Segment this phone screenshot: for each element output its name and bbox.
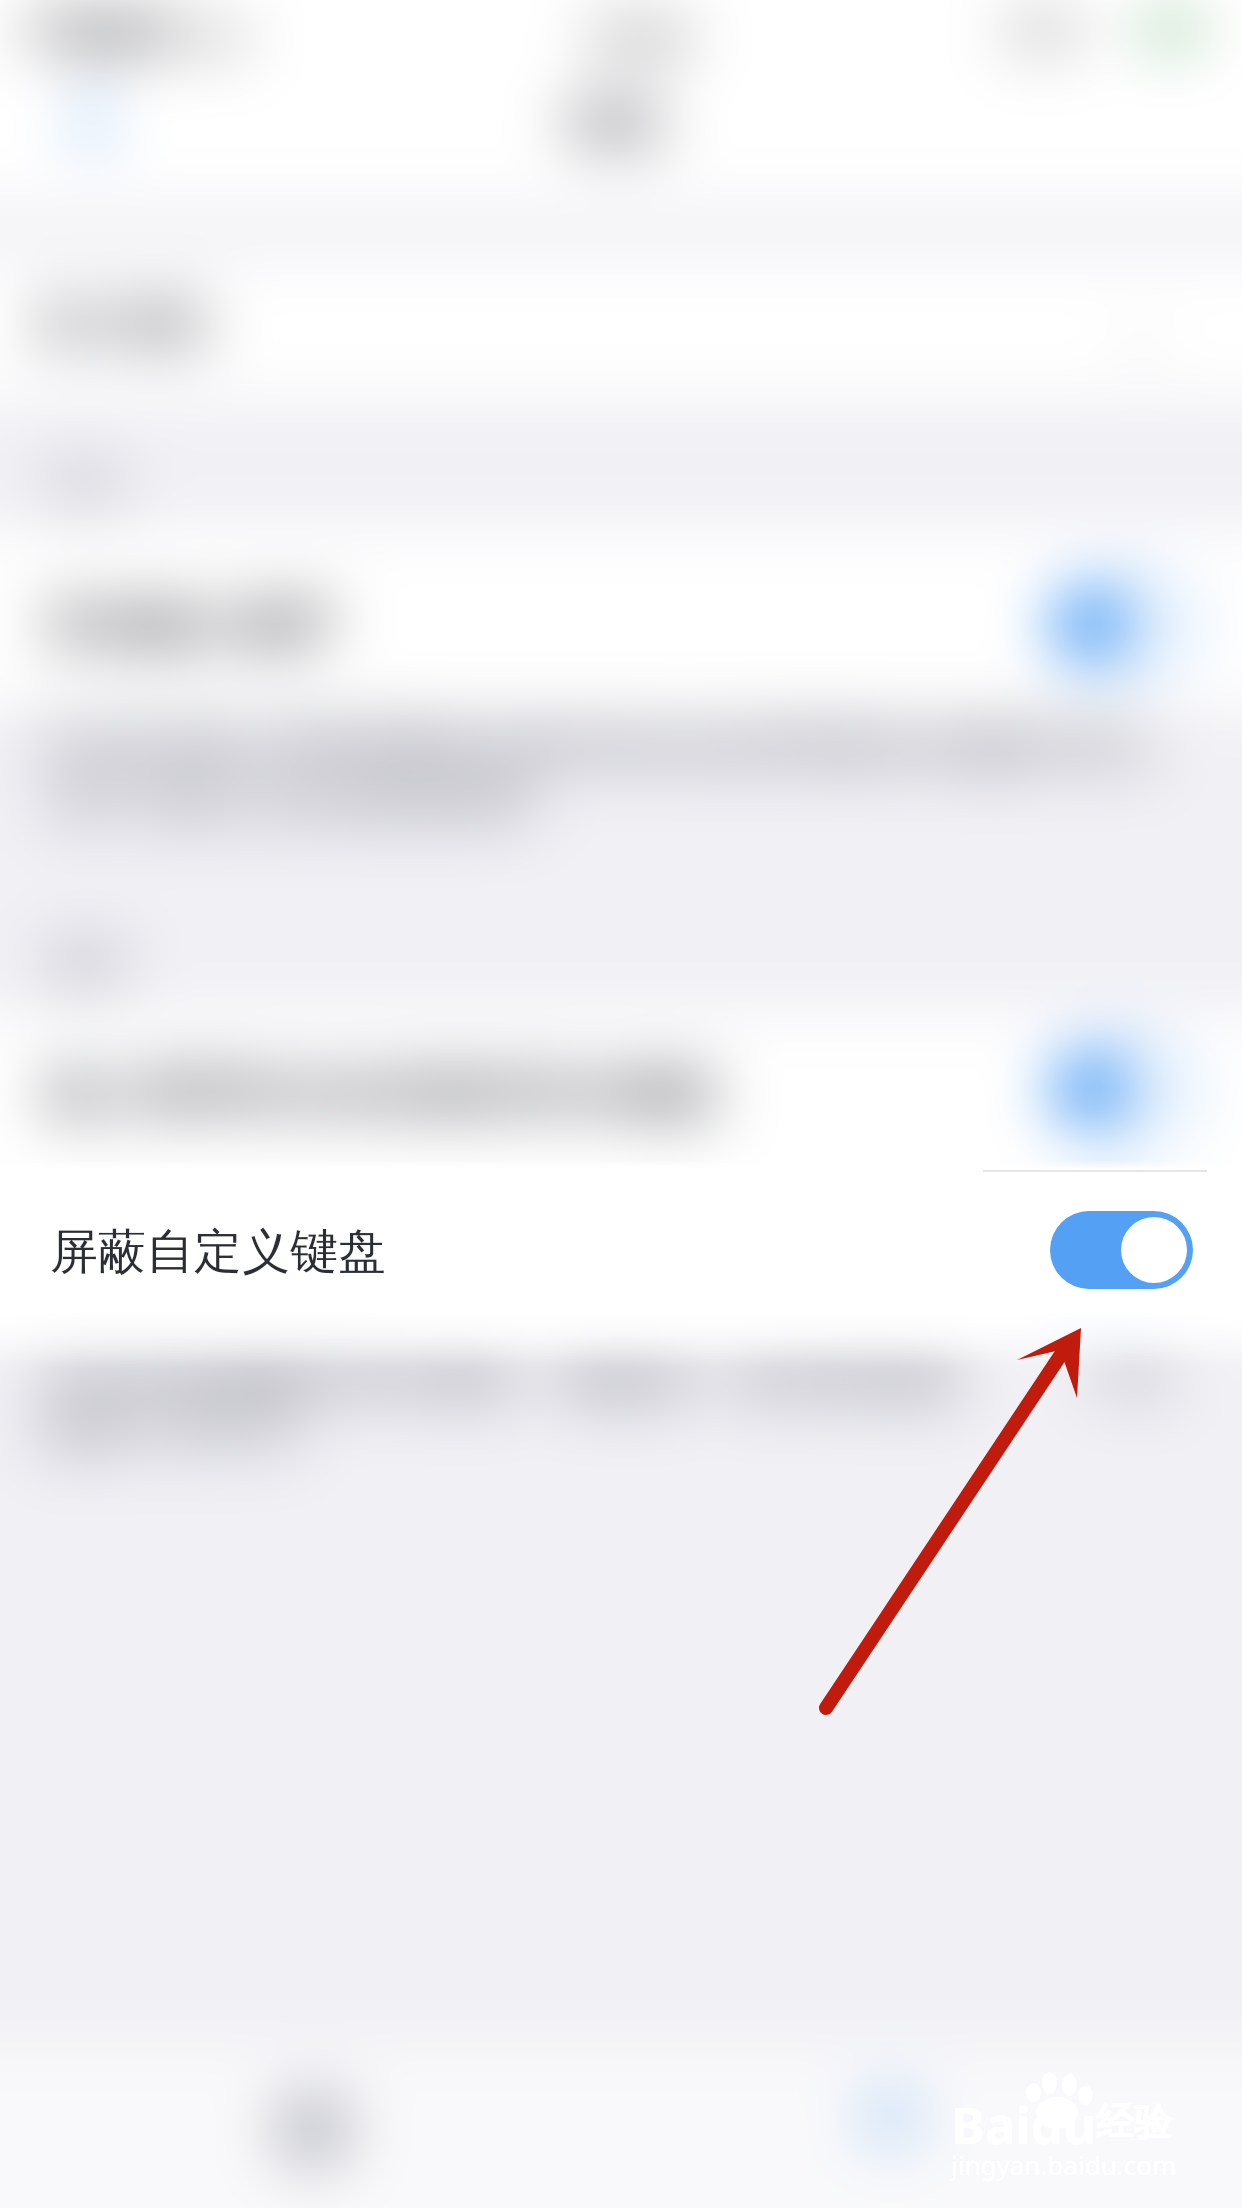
staticText: 盘输入更安全 — [38, 1402, 302, 1457]
button[interactable] — [0, 1012, 1242, 1170]
staticText: 10:24 — [586, 8, 689, 62]
button[interactable]: 安全输入保护开关 — [1050, 586, 1193, 664]
button[interactable] — [0, 258, 1242, 400]
button[interactable]: 自动切换安全键盘开关 — [1050, 1050, 1193, 1128]
button[interactable]: 屏蔽自定义键盘 — [0, 1160, 1242, 1368]
staticText: 开启后在输入密码等隐私信息时将自动启用系统安全键盘可防止 — [38, 722, 1158, 772]
staticText: 详情 — [1090, 1352, 1170, 1402]
staticText: 键盘统一使用系统键 — [560, 1352, 956, 1407]
staticText: 键盘 — [566, 92, 666, 155]
staticText: 安全输入保护 — [46, 596, 334, 656]
staticText: 4G — [200, 12, 247, 61]
staticText: 第三方输入法记录您的密码 — [52, 778, 532, 828]
staticText: 开启后将屏蔽应用内置的 — [38, 1352, 522, 1407]
button[interactable] — [0, 528, 1242, 708]
staticText: Baidu — [951, 2089, 1097, 2158]
staticText: 屏蔽自定义键盘 — [50, 1226, 386, 1286]
staticText: 屏蔽自定义键盘 — [50, 1222, 386, 1282]
staticText: 默认键盘 — [40, 298, 208, 351]
staticText: 中国移动 — [22, 8, 182, 58]
button[interactable]: 屏蔽自定义键盘开关 — [1050, 1212, 1193, 1290]
button[interactable] — [0, 1170, 1242, 1334]
button[interactable]: 屏蔽自定义键盘开关 — [1050, 1211, 1193, 1289]
staticText: 输入密码时自动切换到安全键盘 — [46, 1064, 718, 1124]
